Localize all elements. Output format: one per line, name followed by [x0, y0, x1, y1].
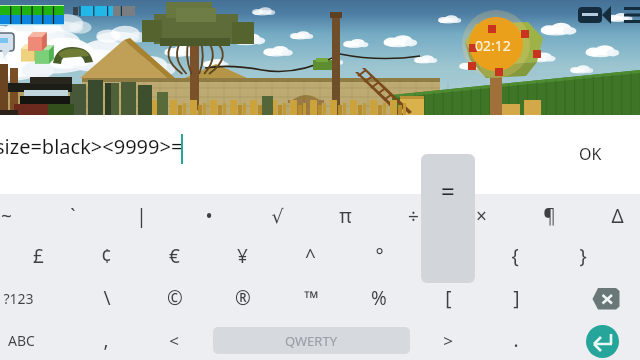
button[interactable]: .: [482, 320, 550, 360]
staticText: ]: [513, 285, 520, 311]
staticText: ~: [1, 203, 12, 229]
staticText: ¶: [543, 203, 556, 229]
button[interactable]: %: [345, 278, 413, 318]
button[interactable]: {: [481, 236, 549, 276]
staticText: ¥: [237, 243, 248, 269]
button[interactable]: [: [414, 278, 482, 318]
button[interactable]: ABC: [0, 320, 55, 360]
button[interactable]: |: [107, 196, 175, 236]
staticText: %: [371, 285, 387, 311]
button[interactable]: Menu: [620, 2, 640, 27]
button[interactable]: ®: [209, 278, 277, 318]
staticText: ,: [103, 327, 109, 353]
button[interactable]: √: [243, 196, 311, 236]
staticText: QWERTY: [285, 332, 338, 350]
staticText: \: [103, 285, 111, 311]
button[interactable]: OK: [565, 137, 616, 171]
staticText: €: [169, 243, 180, 269]
staticText: ^: [305, 243, 316, 269]
button[interactable]: ]: [482, 278, 550, 318]
staticText: ?123: [3, 289, 34, 308]
button[interactable]: €: [140, 236, 208, 276]
button[interactable]: Enter: [586, 325, 619, 358]
staticText: >: [443, 329, 453, 352]
button[interactable]: ×: [447, 196, 515, 236]
staticText: ×: [476, 203, 487, 229]
button[interactable]: ™: [277, 278, 345, 318]
staticText: |: [136, 203, 147, 229]
staticText: ABC: [8, 331, 35, 350]
staticText: `: [70, 203, 76, 229]
button[interactable]: ÷: [379, 196, 447, 236]
staticText: Δ: [611, 203, 624, 229]
button[interactable]: ¥: [208, 236, 276, 276]
button[interactable]: }: [549, 236, 617, 276]
button[interactable]: Record video: [574, 2, 612, 27]
staticText: }: [579, 243, 587, 269]
button[interactable]: >: [414, 320, 482, 360]
staticText: °: [375, 243, 384, 269]
button[interactable]: ~: [0, 196, 40, 236]
button[interactable]: <: [140, 320, 208, 360]
staticText: 02:12: [475, 36, 511, 55]
staticText: ®: [235, 285, 251, 311]
staticText: π: [339, 203, 352, 229]
button[interactable]: £: [4, 236, 72, 276]
button[interactable]: ©: [141, 278, 209, 318]
button[interactable]: =: [421, 154, 475, 283]
button[interactable]: QWERTY: [213, 327, 410, 354]
staticText: OK: [579, 143, 602, 165]
button[interactable]: \: [73, 278, 141, 318]
button[interactable]: °: [345, 236, 413, 276]
staticText: √: [271, 205, 284, 227]
staticText: £: [33, 243, 44, 269]
staticText: =: [441, 174, 455, 207]
button[interactable]: ,: [72, 320, 140, 360]
staticText: ™: [304, 285, 319, 311]
button[interactable]: Backspace: [588, 288, 626, 312]
staticText: ÷: [408, 203, 419, 229]
button[interactable]: •: [175, 196, 243, 236]
staticText: .: [513, 327, 519, 353]
button[interactable]: `: [39, 196, 107, 236]
button[interactable]: π: [311, 196, 379, 236]
staticText: ©: [167, 285, 183, 311]
staticText: [: [445, 285, 452, 311]
button[interactable]: ¢: [72, 236, 140, 276]
button[interactable]: =: [413, 236, 481, 276]
button[interactable]: Δ: [583, 196, 640, 236]
staticText: <: [169, 329, 179, 352]
button[interactable]: ?123: [0, 278, 52, 318]
staticText: {: [511, 243, 519, 269]
button[interactable]: ^: [276, 236, 344, 276]
staticText: size=black><9999>=: [0, 133, 183, 160]
staticText: ¢: [101, 243, 112, 269]
staticText: •: [205, 203, 213, 229]
button[interactable]: ¶: [515, 196, 583, 236]
